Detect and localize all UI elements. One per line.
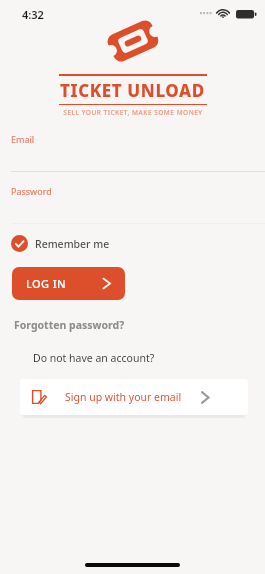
button[interactable]: LOG IN xyxy=(12,267,125,300)
staticText: SELL YOUR TICKET, MAKE SOME MONEY xyxy=(63,108,203,117)
staticText: Sign up with your email xyxy=(65,390,182,404)
staticText: 4:32 xyxy=(22,7,44,22)
staticText: Email xyxy=(11,133,35,145)
staticText: LOG IN xyxy=(26,276,66,291)
staticText: Forgotten password? xyxy=(14,318,125,332)
staticText: TICKET UNLOAD xyxy=(60,79,205,102)
button[interactable]: Remember me xyxy=(11,233,116,254)
staticText: Do not have an account? xyxy=(33,351,155,365)
button[interactable]: Sign up with your email xyxy=(20,379,248,415)
button[interactable]: Email xyxy=(0,133,265,172)
staticText: Remember me xyxy=(35,237,110,251)
button[interactable]: Forgotten password? xyxy=(11,315,128,335)
staticText: Password xyxy=(11,185,52,197)
button[interactable]: Password xyxy=(0,185,265,224)
